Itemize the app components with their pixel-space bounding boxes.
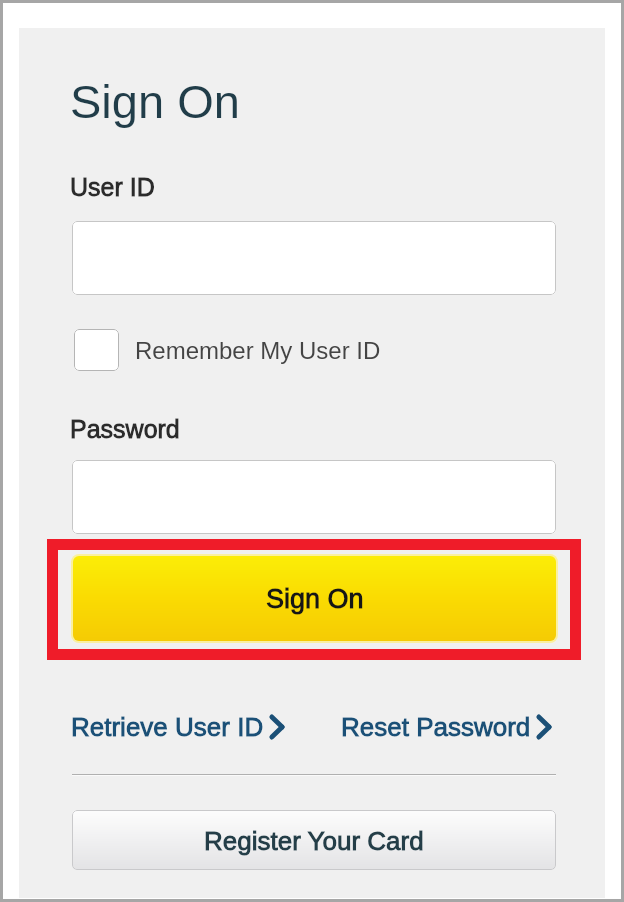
button[interactable]: Remember My User ID <box>74 329 381 371</box>
staticText: Retrieve User ID <box>71 712 264 741</box>
button[interactable]: Reset Password <box>341 712 551 741</box>
staticText: Reset Password <box>341 712 531 741</box>
button[interactable]: Retrieve User ID <box>71 712 284 741</box>
staticText: Remember My User ID <box>135 337 381 364</box>
button[interactable]: User ID input <box>72 221 556 295</box>
staticText: Sign On <box>70 75 240 128</box>
button[interactable]: Sign On <box>73 556 556 641</box>
button[interactable]: Password input <box>72 460 556 534</box>
staticText: Sign On <box>266 584 364 614</box>
staticText: User ID <box>70 173 155 201</box>
button[interactable]: Register Your Card <box>72 810 556 870</box>
staticText: Register Your Card <box>204 826 424 855</box>
staticText: Password <box>70 415 180 443</box>
